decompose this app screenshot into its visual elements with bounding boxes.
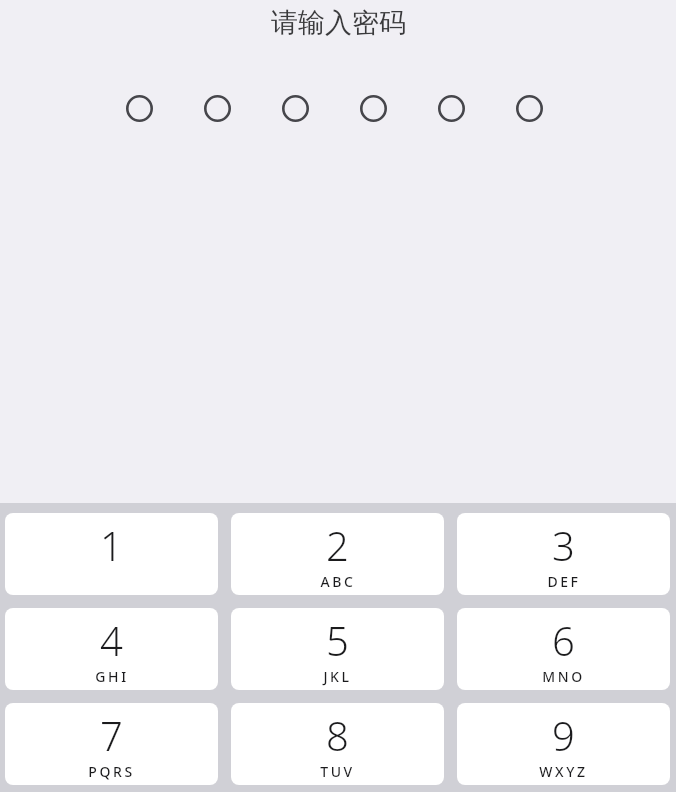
staticText: TUV xyxy=(320,762,355,781)
button[interactable]: 7 xyxy=(5,703,218,785)
staticText: DEF xyxy=(547,572,581,591)
other: Password digit 3 xyxy=(282,95,309,122)
button[interactable]: 6 xyxy=(457,608,670,690)
staticText: 1 xyxy=(100,518,123,572)
staticText: PQRS xyxy=(88,762,135,781)
other: Password digit 4 xyxy=(360,95,387,122)
staticText: 4 xyxy=(100,613,123,667)
button[interactable]: 9 xyxy=(457,703,670,785)
other: Password digit 6 xyxy=(516,95,543,122)
staticText: 9 xyxy=(552,708,575,762)
staticText: 8 xyxy=(326,708,349,762)
button[interactable]: 2 xyxy=(231,513,444,595)
button[interactable]: 8 xyxy=(231,703,444,785)
staticText: MNO xyxy=(542,667,585,686)
staticText: 5 xyxy=(326,613,349,667)
staticText: 3 xyxy=(552,518,575,572)
other: Password digit 5 xyxy=(438,95,465,122)
other: Password digit 1 xyxy=(126,95,153,122)
staticText: 7 xyxy=(100,708,123,762)
button[interactable]: 5 xyxy=(231,608,444,690)
staticText: GHI xyxy=(95,667,129,686)
staticText: ABC xyxy=(320,572,356,591)
staticText: JKL xyxy=(323,667,352,686)
button[interactable]: 4 xyxy=(5,608,218,690)
staticText: 2 xyxy=(326,518,349,572)
staticText: 6 xyxy=(552,613,575,667)
staticText: 请输入密码 xyxy=(271,6,406,40)
button[interactable]: 1 xyxy=(5,513,218,595)
other: Password digit 2 xyxy=(204,95,231,122)
staticText: WXYZ xyxy=(539,762,588,781)
button[interactable]: 3 xyxy=(457,513,670,595)
